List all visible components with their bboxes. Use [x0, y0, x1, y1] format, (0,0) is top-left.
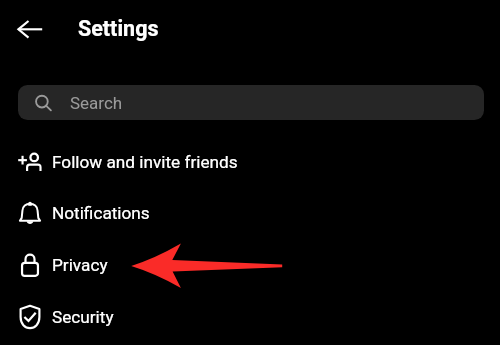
staticText: Search	[70, 93, 123, 113]
button[interactable]: Privacy	[0, 239, 500, 291]
staticText: Privacy	[52, 255, 108, 275]
staticText: Settings	[78, 16, 159, 41]
button[interactable]: Notifications	[0, 187, 500, 239]
button[interactable]: Search	[18, 85, 484, 120]
staticText: Notifications	[52, 203, 150, 223]
button[interactable]: Security	[0, 291, 500, 343]
button[interactable]: Follow and invite friends	[0, 136, 500, 188]
button[interactable]: Back	[10, 10, 50, 50]
staticText: Follow and invite friends	[52, 152, 238, 172]
staticText: Security	[52, 307, 114, 327]
